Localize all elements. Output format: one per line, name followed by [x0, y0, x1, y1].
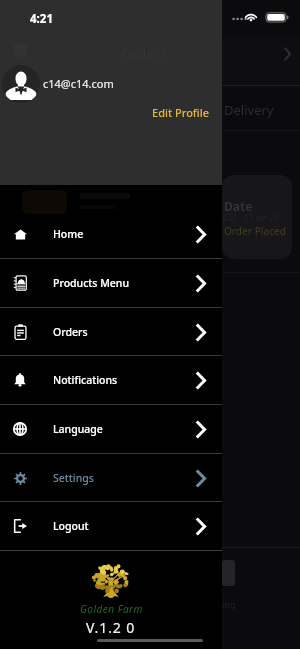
staticText: Home	[53, 227, 84, 241]
button[interactable]: Notifications	[0, 356, 222, 404]
staticText: ing	[222, 598, 236, 610]
button[interactable]: Home	[0, 210, 222, 258]
staticText: Products Menu	[53, 276, 129, 290]
staticText: Language	[53, 422, 103, 436]
button[interactable]: Settings	[0, 454, 222, 502]
staticText: c14@c14.com	[43, 76, 114, 91]
button[interactable]: Orders	[0, 308, 222, 356]
button[interactable]: Language	[0, 405, 222, 453]
staticText: Golden Farm	[80, 602, 143, 616]
staticText: Order Placed	[224, 224, 287, 238]
staticText: 4:21	[30, 11, 53, 27]
staticText: 4:21 11 Jan 23	[222, 212, 279, 223]
staticText: Delivery	[224, 101, 274, 119]
staticText: Logout	[53, 519, 89, 533]
button[interactable]: Edit Profile	[147, 101, 215, 124]
button[interactable]: Profile photo	[2, 65, 40, 103]
button[interactable]: Products Menu	[0, 259, 222, 307]
staticText: Edit Profile	[152, 105, 210, 120]
staticText: Orders	[53, 325, 88, 339]
staticText: Settings	[53, 471, 94, 485]
button[interactable]: Logout	[0, 502, 222, 550]
staticText: Notifications	[53, 373, 118, 387]
staticText: Date	[224, 198, 253, 214]
staticText: V.1.2 0	[86, 618, 136, 637]
